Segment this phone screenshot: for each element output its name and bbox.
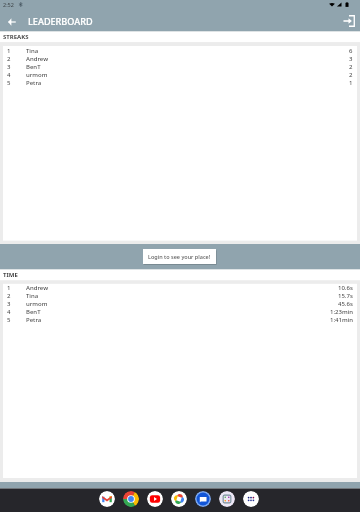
button[interactable]: 5 [0,79,360,87]
button[interactable]: YouTube [147,491,163,507]
staticText: 45.6s [338,300,353,308]
staticText: 3 [7,63,26,71]
staticText: 5 [7,316,26,324]
button[interactable]: 4 [0,71,360,79]
staticText: Tina [26,47,39,55]
staticText: Petra [26,316,42,324]
staticText: 2 [349,71,353,79]
staticText: 2 [7,292,26,300]
staticText: Petra [26,79,42,87]
button[interactable]: 2 [0,55,360,63]
staticText: 10.6s [338,284,353,292]
button[interactable]: Gmail [99,491,115,507]
button[interactable]: All apps [243,491,259,507]
staticText: Login to see your place! [148,253,211,260]
staticText: BenT [26,308,41,316]
staticText: STREAKS [3,33,29,41]
staticText: 5 [7,79,26,87]
button[interactable]: Messages [195,491,211,507]
staticText: 1 [349,79,353,87]
staticText: TIME [3,271,18,279]
staticText: 4 [7,71,26,79]
button[interactable]: Chrome [123,491,139,507]
staticText: 1:23min [330,308,353,316]
staticText: 3 [349,55,353,63]
button[interactable]: Files [219,491,235,507]
staticText: 2:52 [3,1,14,8]
button[interactable]: Photos [171,491,187,507]
staticText: 1:41min [330,316,353,324]
staticText: 1 [7,47,26,55]
button[interactable]: Login [340,12,358,30]
button[interactable]: 5 [0,316,360,324]
button[interactable]: Back [4,14,20,29]
button[interactable]: 2 [0,292,360,300]
staticText: 4 [7,308,26,316]
button[interactable]: 3 [0,63,360,71]
staticText: 1 [7,284,26,292]
button[interactable]: 3 [0,300,360,308]
staticText: urmom [26,71,48,79]
button[interactable]: 1 [0,284,360,292]
staticText: urmom [26,300,48,308]
button[interactable]: 4 [0,308,360,316]
staticText: 3 [7,300,26,308]
staticText: 2 [349,63,353,71]
staticText: Tina [26,292,39,300]
button[interactable]: Login to see your place! [143,249,216,264]
staticText: 2 [7,55,26,63]
staticText: BenT [26,63,41,71]
staticText: Andrew [26,284,48,292]
button[interactable]: 1 [0,47,360,55]
staticText: 6 [349,47,353,55]
staticText: 15.7s [338,292,353,300]
staticText: Andrew [26,55,48,63]
staticText: LEADERBOARD [28,15,93,27]
